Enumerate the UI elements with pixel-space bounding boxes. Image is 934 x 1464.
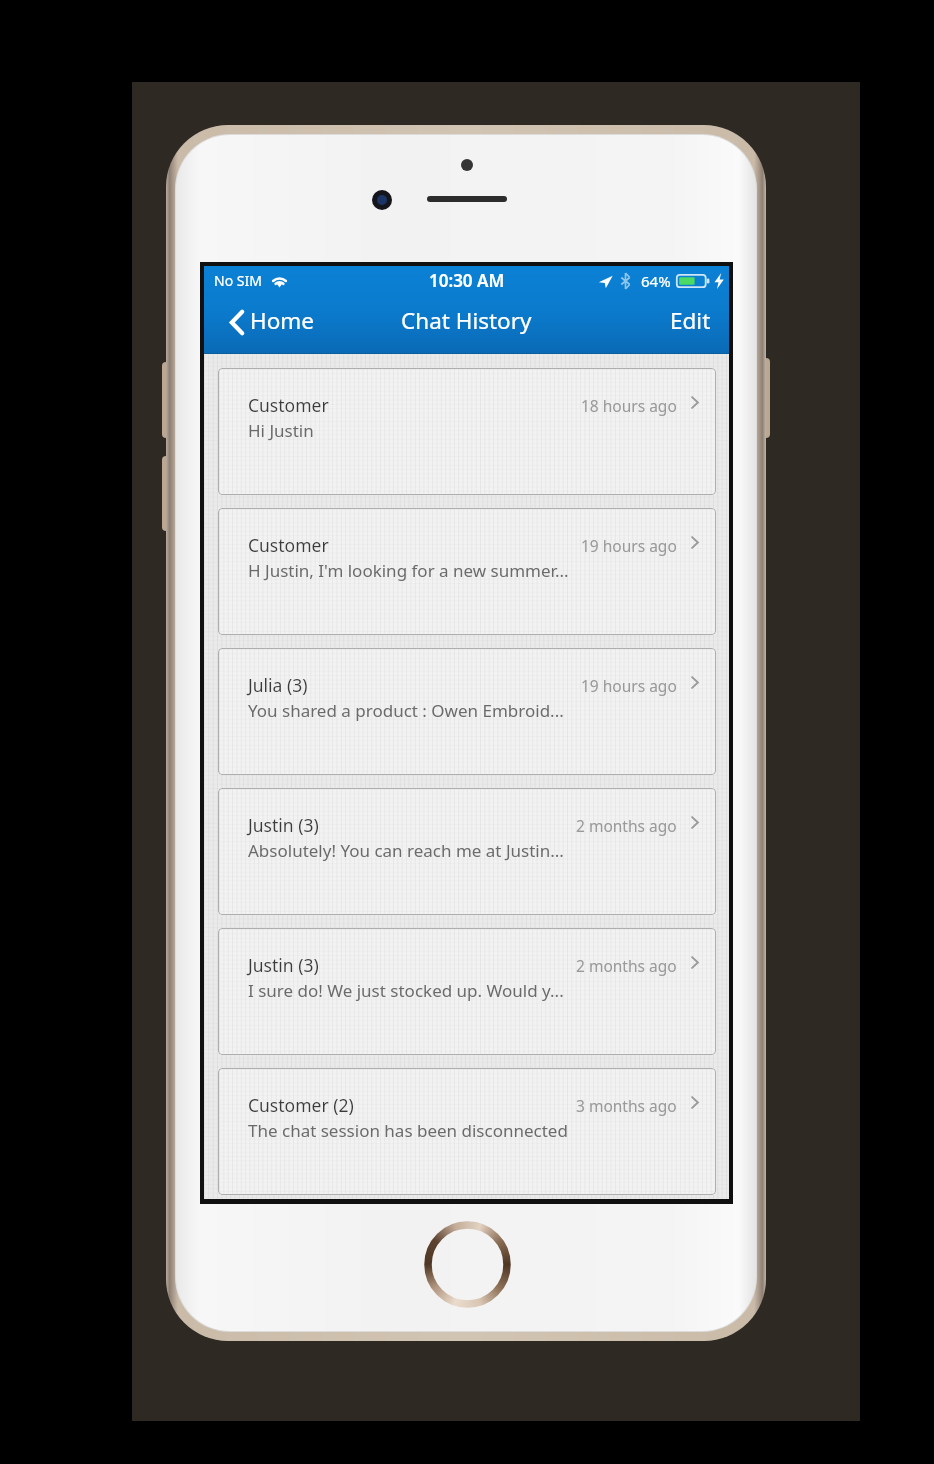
button[interactable]: Justin (3) [218,928,716,1055]
staticText: 2 months ago [576,815,677,836]
staticText: I sure do! We just stocked up. Would y..… [248,979,564,1002]
staticText: 19 hours ago [581,535,677,556]
staticText: Customer [248,533,329,557]
staticText: 10:30 AM [429,269,505,292]
staticText: Julia (3) [248,673,308,697]
staticText: No SIM [214,271,262,290]
button[interactable]: Customer (2) [218,1068,716,1195]
staticText: 18 hours ago [581,395,677,416]
staticText: Chat History [401,305,532,336]
button[interactable]: Julia (3) [218,648,716,775]
staticText: 19 hours ago [581,675,677,696]
staticText: 64% [641,271,671,291]
staticText: H Justin, I'm looking for a new summer..… [248,559,569,582]
button[interactable]: Customer [218,508,716,635]
button[interactable]: Home button [423,1220,512,1309]
button[interactable]: Justin (3) [218,788,716,915]
staticText: The chat session has been disconnected [248,1119,568,1142]
button[interactable]: Edit [652,295,729,354]
button[interactable]: Customer [218,368,716,495]
staticText: Customer (2) [248,1093,354,1117]
staticText: Hi Justin [248,419,314,442]
staticText: Justin (3) [248,953,319,977]
staticText: Home [250,305,315,336]
staticText: Edit [670,305,711,336]
staticText: Justin (3) [248,813,319,837]
staticText: 3 months ago [576,1095,677,1116]
button[interactable]: Home [204,295,331,354]
staticText: 2 months ago [576,955,677,976]
staticText: You shared a product : Owen Embroid... [248,699,564,722]
staticText: Customer [248,393,329,417]
staticText: Absolutely! You can reach me at Justin..… [248,839,564,862]
